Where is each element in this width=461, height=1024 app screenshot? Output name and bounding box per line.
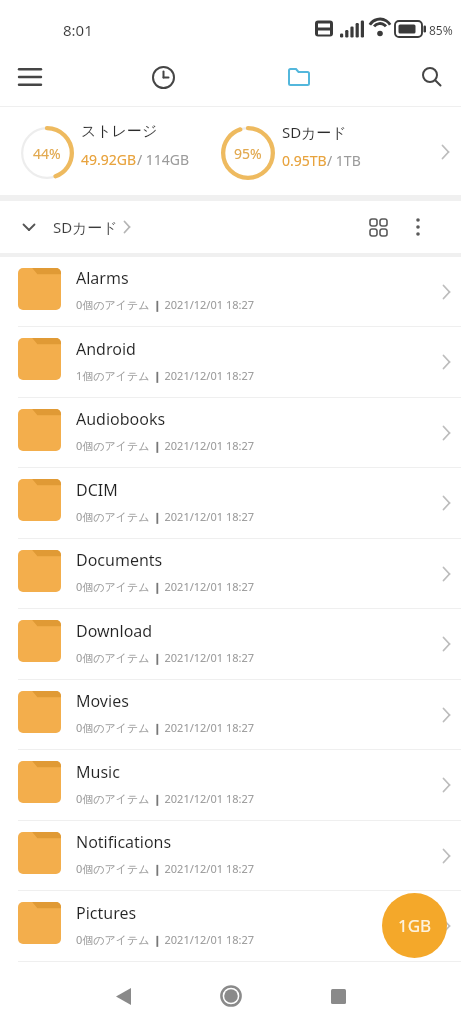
button[interactable]: Audiobooks [0,398,461,468]
staticText: 0個のアイテム ❙ 2021/12/01 18:27 [76,932,255,947]
staticText: Documents [76,549,163,571]
staticText: 0個のアイテム ❙ 2021/12/01 18:27 [76,579,255,594]
staticText: 44% [33,144,61,163]
staticText: 85% [429,22,453,38]
staticText: Movies [76,690,129,712]
button[interactable] [277,61,321,93]
staticText: SDカード [53,217,118,237]
staticText: 1GB [398,914,432,937]
staticText: 8:01 [63,20,93,40]
button[interactable] [17,215,41,239]
staticText: 0個のアイテム ❙ 2021/12/01 18:27 [76,509,255,524]
button[interactable]: Notifications [0,821,461,891]
button[interactable]: DCIM [0,468,461,539]
staticText: Pictures [76,902,137,924]
staticText: 0個のアイテム ❙ 2021/12/01 18:27 [76,791,255,806]
staticText: Download [76,620,153,642]
staticText: / 1TB [327,151,361,170]
staticText: 0個のアイテム ❙ 2021/12/01 18:27 [76,650,255,665]
staticText: / 114GB [137,150,190,169]
button[interactable]: Movies [0,680,461,750]
staticText: SDカード [282,122,347,142]
button[interactable]: Download [0,609,461,680]
staticText: 1個のアイテム ❙ 2021/12/01 18:27 [76,368,255,383]
button[interactable]: Pictures [0,891,461,962]
staticText: Notifications [76,831,172,853]
button[interactable] [207,972,255,1020]
button[interactable] [8,61,52,93]
staticText: 0個のアイテム ❙ 2021/12/01 18:27 [76,438,255,453]
staticText: DCIM [76,479,118,501]
button[interactable] [99,972,147,1020]
button[interactable] [403,212,433,242]
staticText: 0個のアイテム ❙ 2021/12/01 18:27 [76,720,255,735]
staticText: 95% [234,144,262,163]
staticText: Android [76,338,136,360]
staticText: 0.95TB [282,151,327,170]
staticText: Audiobooks [76,408,166,430]
button[interactable] [141,61,185,93]
button[interactable] [410,61,454,93]
button[interactable]: 44% [0,107,461,195]
button[interactable]: Documents [0,539,461,609]
button[interactable]: Android [0,327,461,398]
button[interactable]: Music [0,750,461,821]
button[interactable]: Alarms [0,257,461,327]
button[interactable]: 1GB [382,893,447,958]
staticText: 0個のアイテム ❙ 2021/12/01 18:27 [76,297,255,312]
staticText: Alarms [76,267,129,289]
staticText: Music [76,761,120,783]
button[interactable] [361,210,395,244]
staticText: 0個のアイテム ❙ 2021/12/01 18:27 [76,861,255,876]
staticText: ストレージ [81,122,158,141]
button[interactable] [314,972,362,1020]
staticText: 49.92GB [81,150,137,169]
